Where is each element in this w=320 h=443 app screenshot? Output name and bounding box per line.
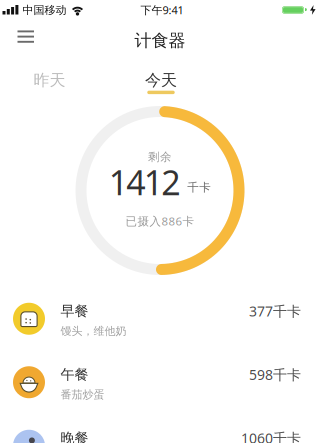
button[interactable]: 菜单: [0, 24, 34, 49]
button[interactable]: 昨天: [0, 58, 99, 95]
staticText: 已摄入886卡: [125, 213, 194, 229]
button[interactable]: 午餐: [0, 350, 320, 414]
staticText: 1060千卡: [241, 428, 301, 443]
staticText: 馒头，维他奶: [60, 324, 126, 338]
staticText: 早餐: [60, 302, 88, 320]
button[interactable]: 晚餐: [0, 414, 320, 443]
staticText: 598千卡: [249, 365, 301, 384]
button[interactable]: 今天: [99, 58, 223, 95]
staticText: 午餐: [60, 366, 88, 383]
staticText: 剩余: [148, 150, 172, 164]
staticText: 下午9:41: [140, 2, 183, 17]
staticText: 中国移动: [22, 3, 66, 17]
staticText: 昨天: [33, 70, 65, 90]
staticText: 晚餐: [60, 429, 88, 443]
staticText: 1412: [109, 159, 180, 205]
staticText: 千卡: [187, 180, 211, 195]
staticText: 今天: [145, 70, 177, 90]
staticText: 计食器: [134, 30, 185, 51]
button[interactable]: 早餐: [0, 287, 320, 350]
staticText: 番茄炒蛋: [60, 388, 104, 401]
staticText: 377千卡: [249, 301, 301, 321]
